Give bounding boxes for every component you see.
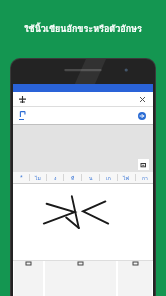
button[interactable]: *: [13, 172, 29, 183]
button[interactable]: ง: [47, 172, 63, 183]
button[interactable]: น: [82, 172, 99, 183]
button[interactable]: Keyboard: [138, 159, 149, 170]
staticText: ไฟ: [123, 174, 130, 182]
staticText: ไม: [35, 174, 41, 182]
button[interactable]: ที: [64, 172, 81, 183]
button[interactable]: กา: [136, 172, 153, 183]
staticText: เก: [106, 174, 111, 182]
button[interactable]: Next: [136, 110, 147, 121]
staticText: *: [20, 174, 23, 181]
button[interactable]: Handwriting area: [13, 184, 153, 260]
button[interactable]: Key: [45, 261, 116, 296]
button[interactable]: Key: [118, 261, 152, 296]
button[interactable]: ไม: [30, 172, 46, 183]
button[interactable]: Next: [13, 107, 153, 124]
button[interactable]: Key: [14, 261, 43, 296]
staticText: ใช้นิ้วเขียนอักขระหรือตัวอักษร: [24, 22, 142, 36]
button[interactable]: Close: [137, 94, 147, 104]
button[interactable]: ไฟ: [118, 172, 135, 183]
button[interactable]: Close: [13, 92, 153, 106]
staticText: ที: [71, 174, 75, 182]
staticText: กา: [142, 174, 148, 182]
button[interactable]: เก: [100, 172, 117, 183]
staticText: น: [89, 174, 93, 182]
staticText: ง: [54, 174, 57, 182]
